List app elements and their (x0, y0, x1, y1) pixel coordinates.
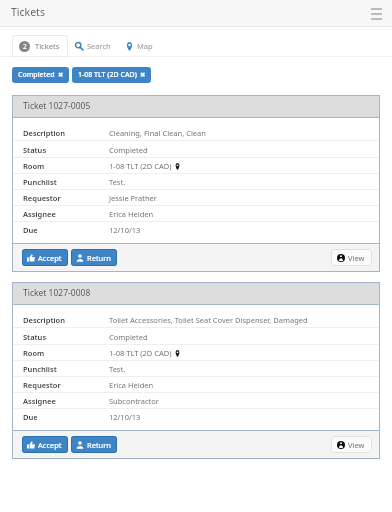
staticText: Erica Heiden (109, 209, 154, 219)
button[interactable]: Menu (368, 6, 384, 22)
staticText: Assignee (23, 209, 56, 219)
button[interactable]: 1-08 TLT (2D CAD) (72, 67, 151, 83)
staticText: Search (87, 41, 111, 51)
staticText: 2 (23, 42, 27, 51)
staticText: Jessie Prather (109, 193, 157, 203)
staticText: Requestor (23, 380, 61, 390)
button[interactable]: Map (123, 35, 156, 57)
staticText: Cleaning, Final Clean, Clean (109, 128, 206, 138)
staticText: 12/10/13 (109, 412, 141, 422)
staticText: ✖ (140, 71, 146, 79)
staticText: View (348, 253, 365, 263)
staticText: Description (23, 315, 65, 325)
staticText: Subcontractor (109, 396, 159, 406)
button[interactable]: 2 (12, 35, 68, 57)
staticText: ✖ (58, 71, 64, 79)
staticText: 1-08 TLT (2D CAD) (109, 161, 172, 171)
staticText: 12/10/13 (109, 225, 141, 235)
staticText: Punchlist (23, 177, 57, 187)
staticText: Return (87, 253, 111, 263)
staticText: Status (23, 145, 47, 155)
staticText: Test. (109, 177, 126, 187)
staticText: View (348, 440, 365, 450)
button[interactable]: View (331, 436, 372, 453)
staticText: Due (23, 225, 38, 235)
staticText: Description (23, 128, 65, 138)
staticText: Completed (109, 145, 148, 155)
staticText: Room (23, 161, 45, 171)
button[interactable]: Completed (12, 67, 69, 83)
button[interactable]: Accept (22, 436, 68, 453)
button[interactable]: Accept (22, 249, 68, 266)
staticText: Return (87, 440, 111, 450)
staticText: Test. (109, 364, 126, 374)
button[interactable]: Return (71, 249, 117, 266)
staticText: Punchlist (23, 364, 57, 374)
staticText: Accept (38, 440, 62, 450)
button[interactable]: Search (72, 35, 114, 57)
staticText: Ticket 1027-0005 (23, 100, 91, 112)
button[interactable]: Return (71, 436, 117, 453)
staticText: 1-08 TLT (2D CAD) (109, 348, 172, 358)
staticText: Accept (38, 253, 62, 263)
staticText: Toilet Accessories, Toilet Seat Cover Di… (109, 315, 308, 325)
staticText: Room (23, 348, 45, 358)
button[interactable]: View (331, 249, 372, 266)
staticText: Tickets (11, 5, 45, 19)
staticText: Erica Heiden (109, 380, 154, 390)
staticText: Completed (18, 70, 55, 80)
staticText: Ticket 1027-0008 (23, 287, 91, 299)
staticText: Tickets (35, 41, 60, 51)
staticText: Status (23, 332, 47, 342)
staticText: Due (23, 412, 38, 422)
staticText: Assignee (23, 396, 56, 406)
staticText: Map (137, 41, 153, 51)
staticText: 1-08 TLT (2D CAD) (78, 70, 137, 80)
staticText: Requestor (23, 193, 61, 203)
staticText: Completed (109, 332, 148, 342)
